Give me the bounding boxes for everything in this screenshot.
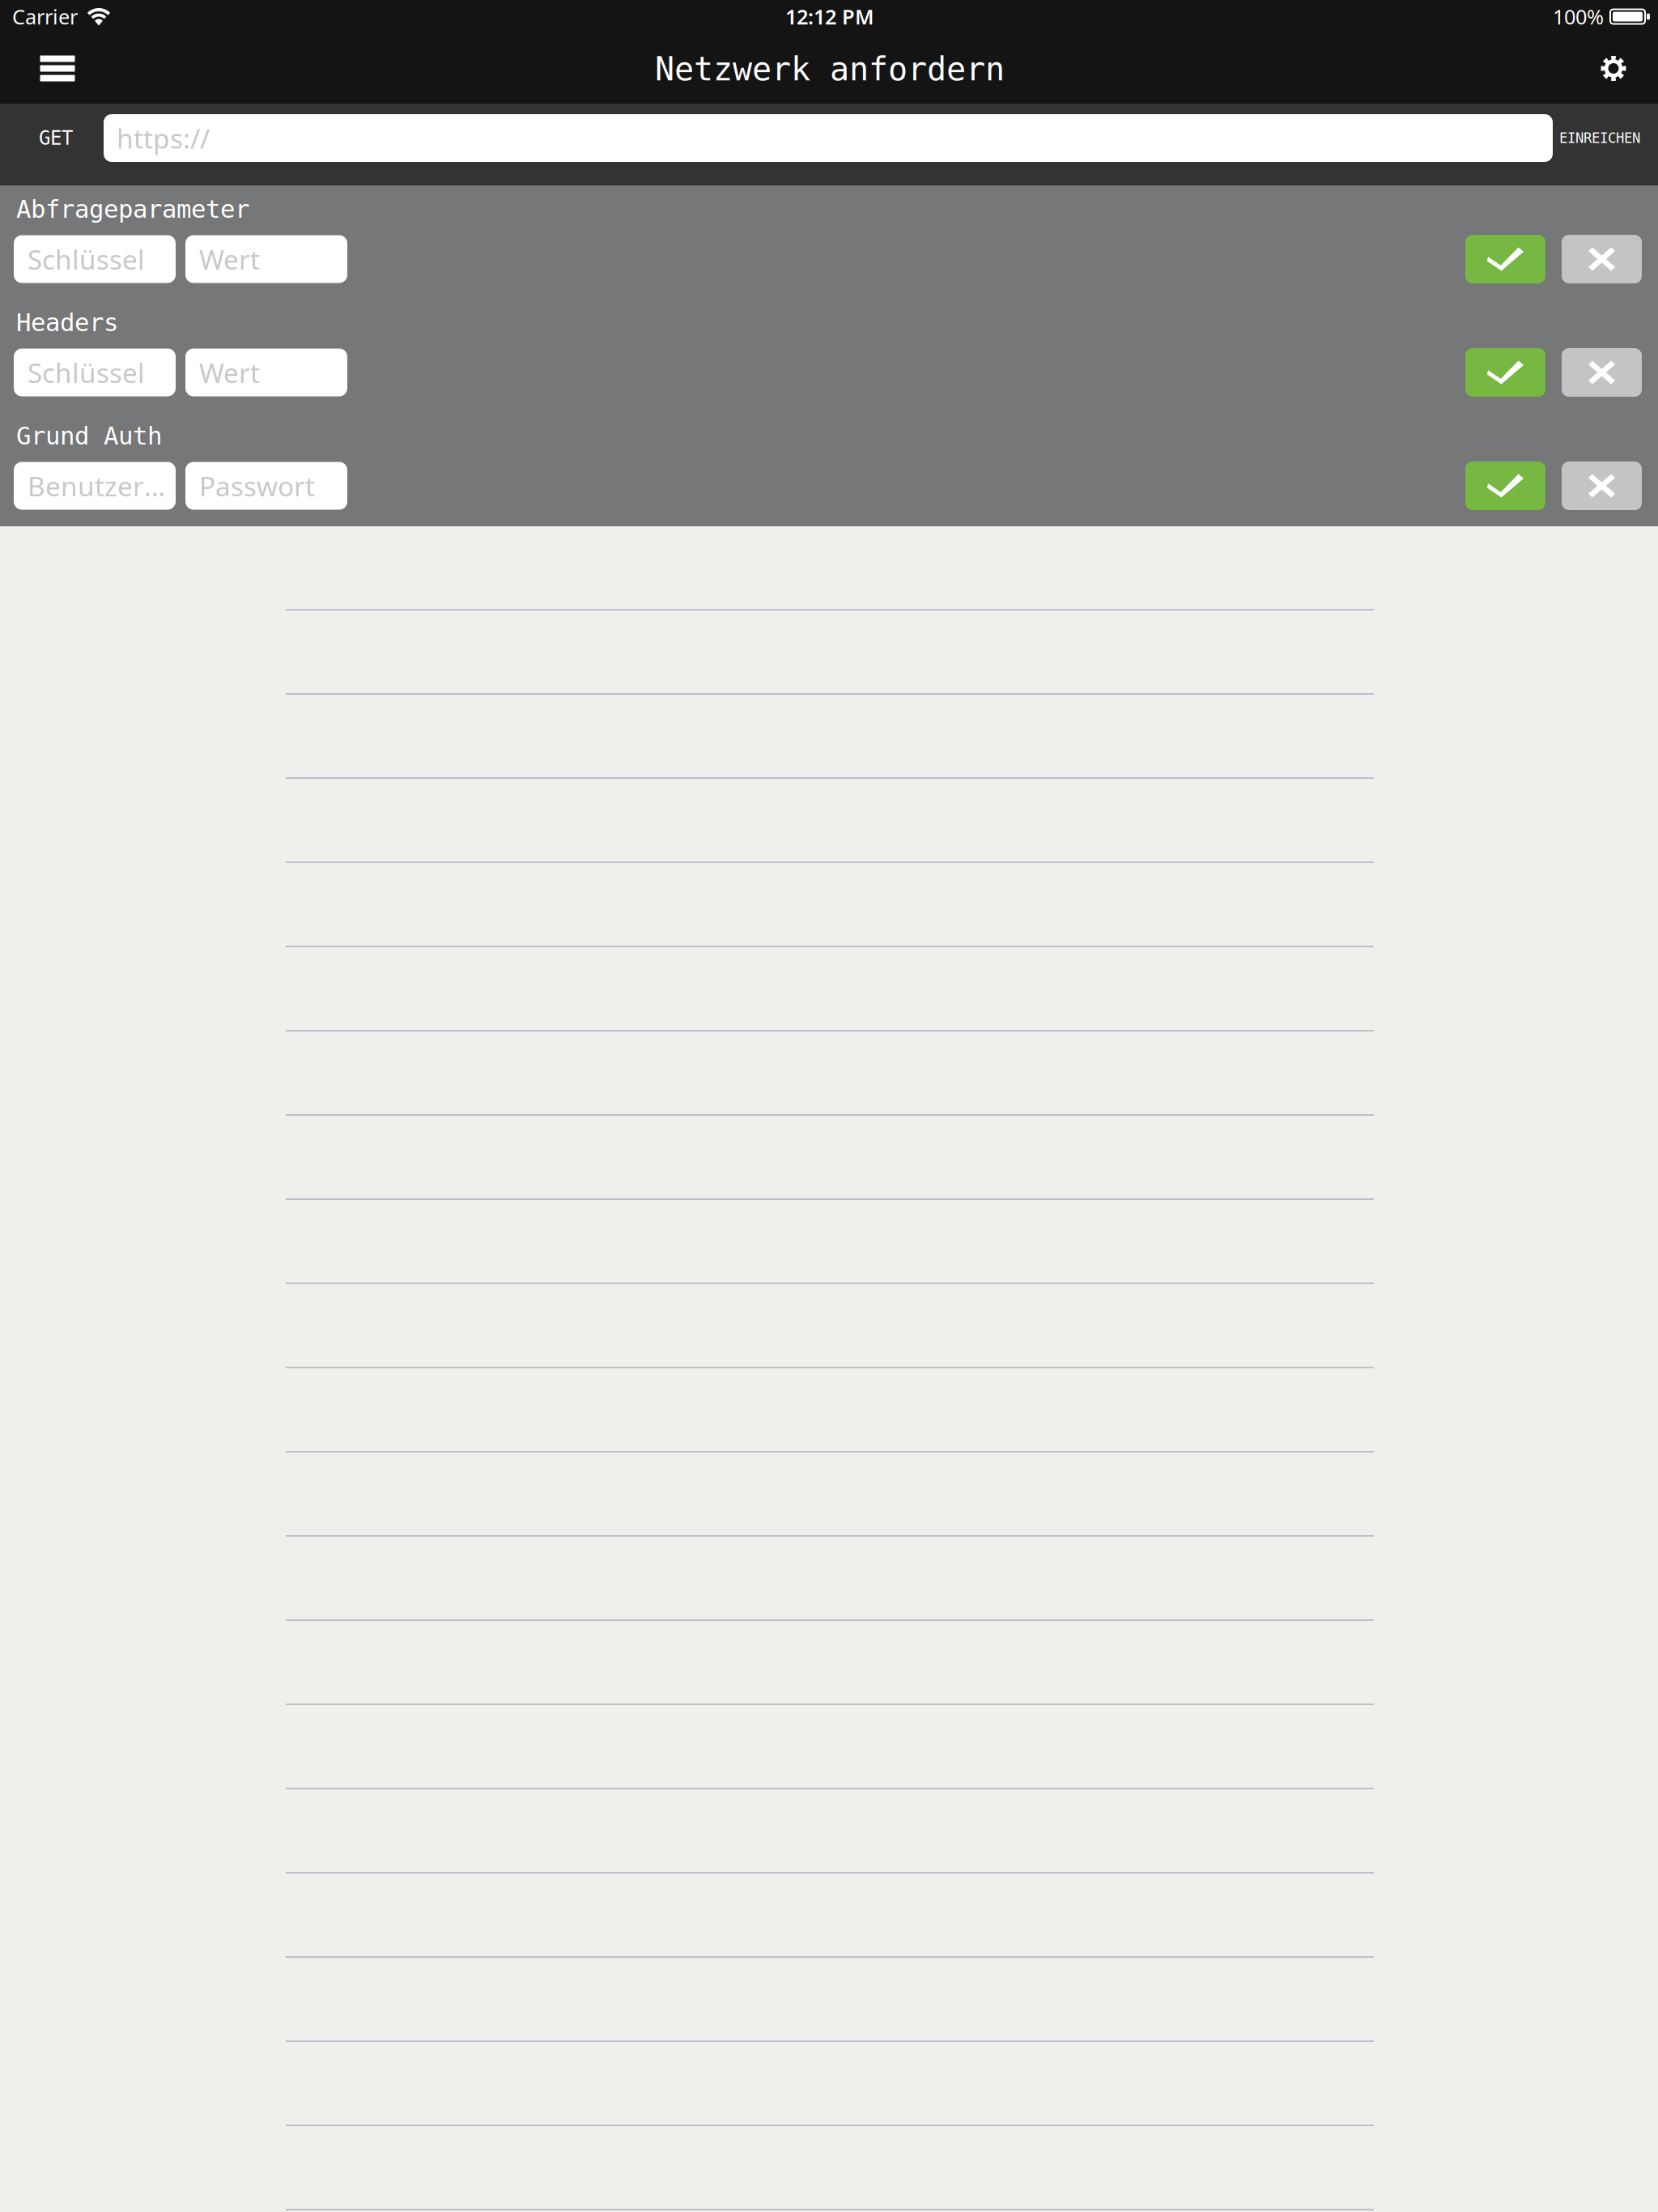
staticText: Wert	[199, 241, 260, 277]
staticText: EINREICHEN	[1559, 130, 1640, 146]
button[interactable]: Settings	[1579, 33, 1648, 104]
button[interactable]: Clear Grund Auth	[1562, 462, 1642, 510]
staticText: Carrier	[12, 3, 78, 30]
staticText: 100%	[1553, 3, 1604, 30]
staticText: Headers	[16, 308, 118, 337]
staticText: Passwort	[199, 468, 315, 504]
staticText: Grund Auth	[16, 422, 162, 450]
staticText: Schlüssel	[28, 355, 145, 390]
staticText: Abfrageparameter	[16, 195, 249, 223]
staticText: Schlüssel	[28, 241, 145, 277]
button[interactable]: Clear Abfrageparameter	[1562, 235, 1642, 283]
button[interactable]: Add Abfrageparameter	[1465, 235, 1545, 283]
button[interactable]: Add Grund Auth	[1465, 462, 1545, 510]
staticText: Wert	[199, 355, 260, 390]
button[interactable]: Add Headers	[1465, 348, 1545, 397]
staticText: Netzwerk anfordern	[655, 51, 1005, 88]
staticText: Benutzerna…	[28, 468, 176, 504]
button[interactable]: Clear Headers	[1562, 348, 1642, 397]
button[interactable]: Menu	[23, 33, 92, 104]
staticText: GET	[39, 127, 73, 149]
button[interactable]: EINREICHEN	[1553, 114, 1658, 162]
staticText: https://	[117, 120, 210, 156]
staticText: 12:12 PM	[785, 3, 874, 30]
